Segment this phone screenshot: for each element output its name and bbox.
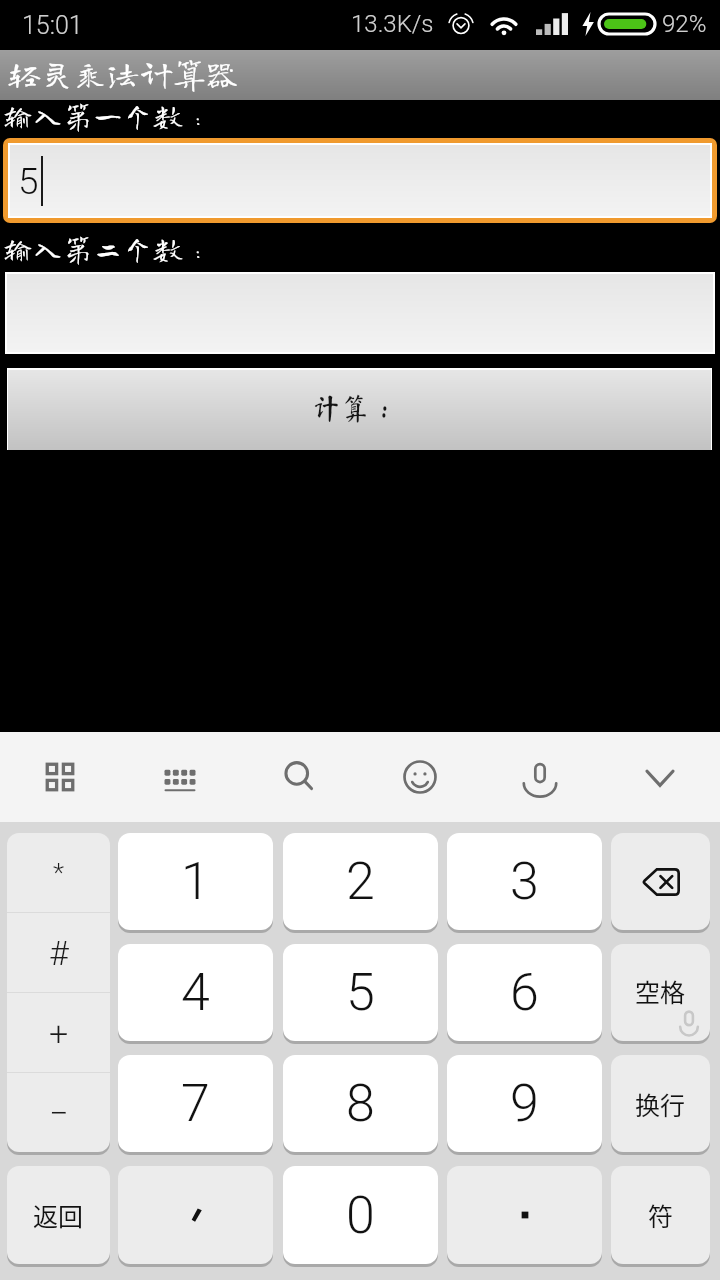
staticText: 5	[18, 160, 39, 203]
button[interactable]: 5	[10, 145, 710, 216]
staticText: 9	[510, 1073, 539, 1134]
staticText: 输入第二个数：	[3, 234, 213, 264]
staticText: 计算：	[312, 393, 400, 422]
staticText: 输入第一个数：	[3, 101, 213, 131]
button[interactable]	[118, 1166, 273, 1264]
staticText: 空格	[635, 973, 686, 1009]
staticText: 8	[346, 1073, 375, 1134]
staticText: 5	[346, 962, 375, 1023]
staticText: #	[49, 933, 69, 973]
staticText: 轻灵乘法计算器	[8, 57, 239, 90]
button[interactable]: 0	[283, 1166, 438, 1264]
button[interactable]: 8	[283, 1055, 438, 1152]
button[interactable]: Keyboard layout	[120, 732, 240, 822]
button[interactable]: 6	[447, 944, 602, 1041]
staticText: 2	[346, 851, 375, 912]
staticText: 1	[181, 851, 210, 912]
button[interactable]: Search	[240, 732, 360, 822]
button[interactable]: 1	[118, 833, 273, 930]
button[interactable]: 4	[118, 944, 273, 1041]
staticText: 6	[510, 962, 539, 1023]
button[interactable]: 5	[283, 944, 438, 1041]
button[interactable]: Emoji	[360, 732, 480, 822]
staticText: +	[49, 1013, 69, 1053]
button[interactable]: Hide keyboard	[600, 732, 720, 822]
button[interactable]: 7	[118, 1055, 273, 1152]
staticText: 4	[181, 962, 210, 1023]
staticText: 3	[510, 851, 539, 912]
button[interactable]: 返回	[7, 1166, 110, 1264]
button[interactable]: 2	[283, 833, 438, 930]
staticText: 13.3K/s	[351, 10, 434, 38]
staticText: 92%	[662, 10, 707, 38]
button[interactable]: Voice input	[480, 732, 600, 822]
staticText: 符	[648, 1197, 674, 1233]
button[interactable]: Symbols	[0, 732, 120, 822]
button[interactable]: 9	[447, 1055, 602, 1152]
button[interactable]: *	[7, 833, 110, 1152]
staticText: 0	[346, 1185, 375, 1246]
button[interactable]: 换行	[611, 1055, 710, 1152]
staticText: *	[53, 858, 65, 888]
staticText: 换行	[635, 1086, 686, 1122]
button[interactable]: 3	[447, 833, 602, 930]
staticText: 7	[181, 1073, 210, 1134]
button[interactable]: 计算：	[8, 370, 711, 450]
button[interactable]: 空格	[611, 944, 710, 1041]
staticText: −	[49, 1093, 69, 1133]
button[interactable]: 符	[611, 1166, 710, 1264]
button[interactable]	[611, 833, 710, 930]
button[interactable]	[447, 1166, 602, 1264]
staticText: 15:01	[22, 11, 83, 40]
staticText: 返回	[33, 1197, 84, 1233]
button[interactable]	[7, 274, 713, 352]
